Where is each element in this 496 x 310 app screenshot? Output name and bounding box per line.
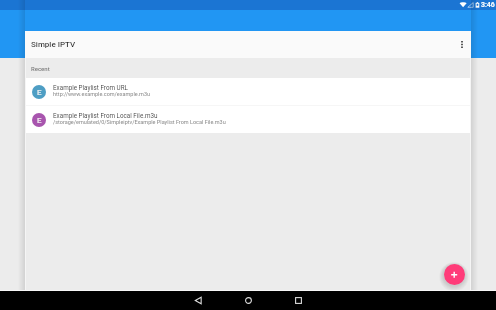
staticText: Simple IPTV bbox=[31, 40, 76, 49]
staticText: /storage/emulated/0/Simpleiptv/Example P… bbox=[53, 119, 496, 125]
staticText: http://www.example.com/example.m3u bbox=[53, 91, 496, 97]
staticText: E bbox=[37, 116, 42, 125]
button[interactable]: E bbox=[25, 78, 471, 105]
staticText: Example Playlist From URL bbox=[53, 84, 496, 91]
button[interactable]: More options bbox=[454, 36, 470, 52]
staticText: Recent bbox=[31, 65, 50, 72]
staticText: Example Playlist From Local File.m3u bbox=[53, 112, 496, 119]
button[interactable]: Home bbox=[238, 290, 258, 310]
button[interactable]: Recent apps bbox=[288, 290, 308, 310]
staticText: E bbox=[37, 88, 42, 97]
button[interactable]: Add playlist bbox=[444, 264, 465, 285]
staticText: 3:46 bbox=[481, 1, 495, 9]
button[interactable]: E bbox=[25, 106, 471, 133]
button[interactable]: Back bbox=[188, 290, 208, 310]
